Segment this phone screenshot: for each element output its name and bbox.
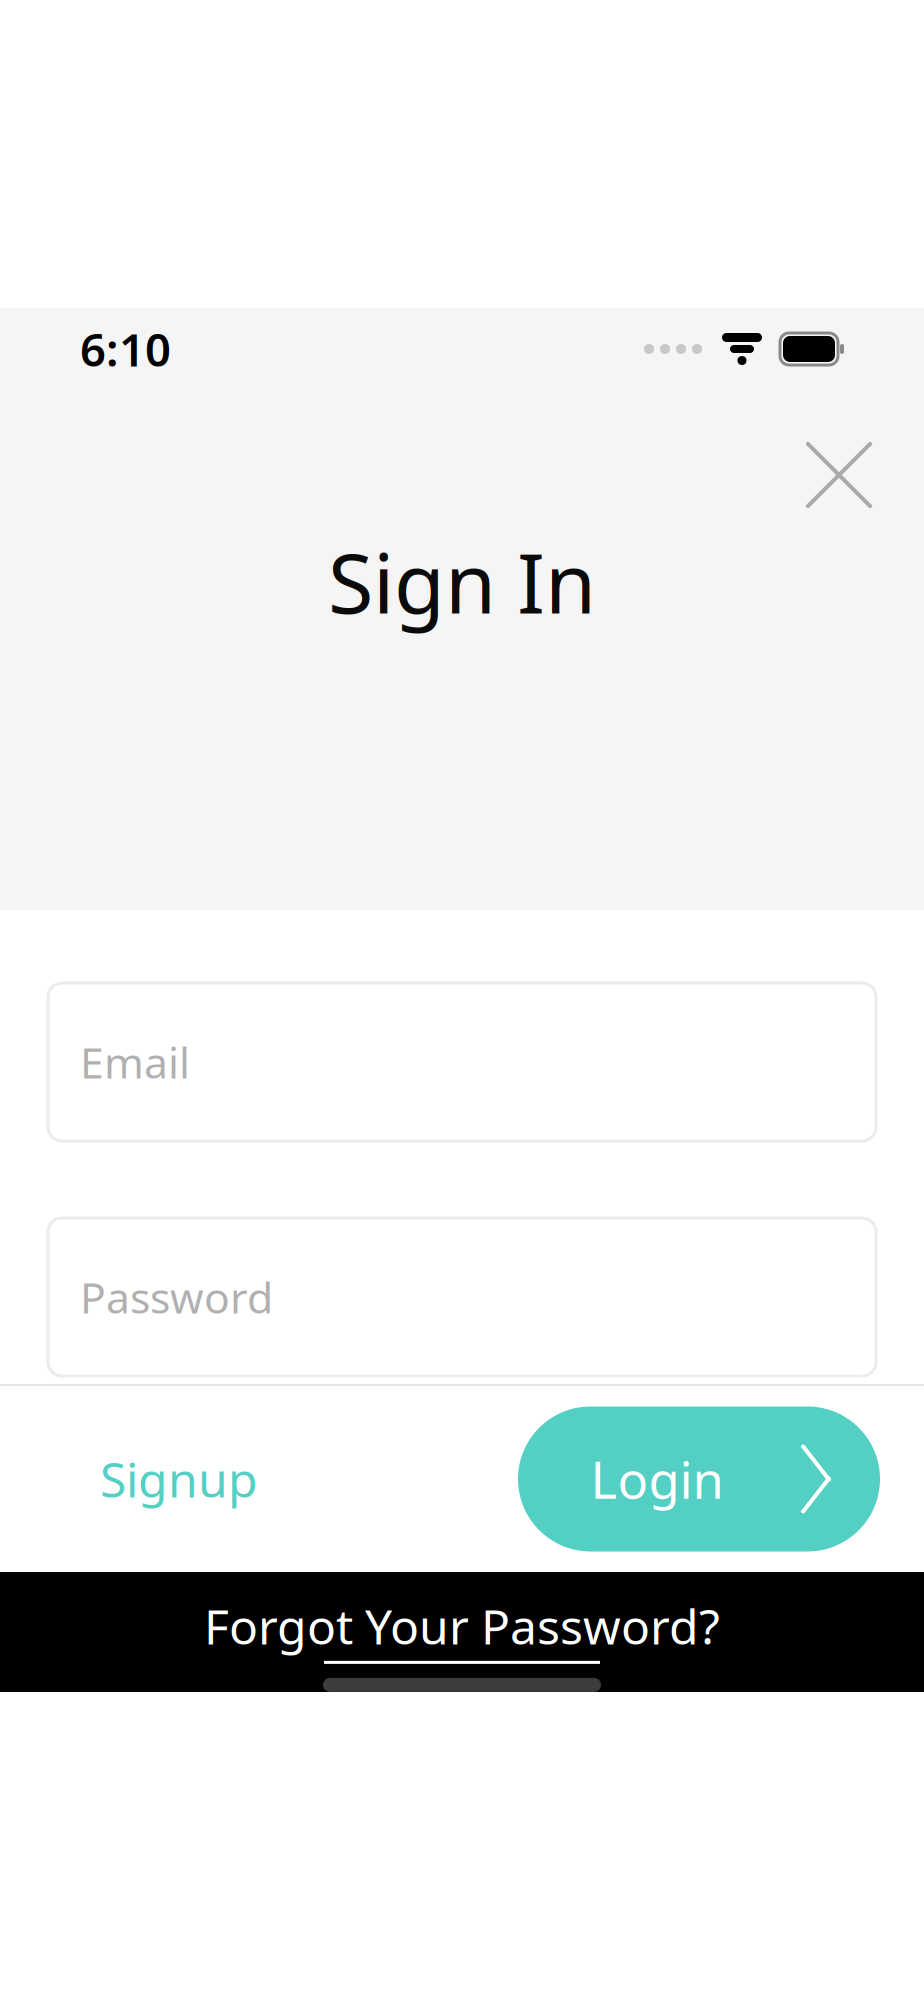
staticText: Sign In (328, 526, 596, 636)
staticText: Login (590, 1445, 723, 1513)
button[interactable]: Password (48, 1218, 876, 1376)
button[interactable]: Close (784, 420, 894, 530)
staticText: Signup (100, 1447, 258, 1511)
staticText: Email (80, 1034, 190, 1090)
staticText: Forgot Your Password? (204, 1594, 720, 1658)
button[interactable]: Login (518, 1406, 880, 1551)
button[interactable]: Forgot Your Password? (184, 1588, 740, 1670)
staticText: 6:10 (80, 319, 171, 379)
staticText: Password (80, 1269, 273, 1325)
button[interactable]: Email (48, 983, 876, 1141)
button[interactable]: Signup (14, 1406, 344, 1551)
